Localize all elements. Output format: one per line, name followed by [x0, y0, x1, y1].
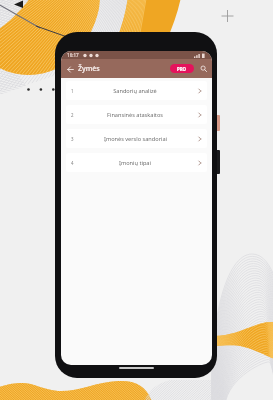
staticText: PRO [177, 66, 187, 72]
staticText: Įmonės verslo sandoriai [104, 135, 167, 143]
staticText: 16:17 [67, 52, 79, 58]
button[interactable]: 2 [66, 105, 207, 124]
button[interactable]: Back [65, 64, 75, 74]
button[interactable]: Search [199, 64, 208, 73]
button[interactable]: 3 [66, 129, 207, 148]
button[interactable]: 4 [66, 153, 207, 172]
staticText: 3 [71, 136, 74, 142]
staticText: Žymės [78, 64, 100, 74]
button[interactable]: PRO [170, 64, 194, 73]
staticText: Finansinės ataskaitos [107, 111, 163, 119]
staticText: 4 [71, 160, 74, 166]
staticText: Įmonių tipai [119, 159, 151, 167]
staticText: 2 [71, 112, 74, 118]
staticText: Sandorių analizė [113, 87, 157, 95]
button[interactable]: 1 [66, 81, 207, 100]
staticText: 1 [71, 88, 74, 94]
